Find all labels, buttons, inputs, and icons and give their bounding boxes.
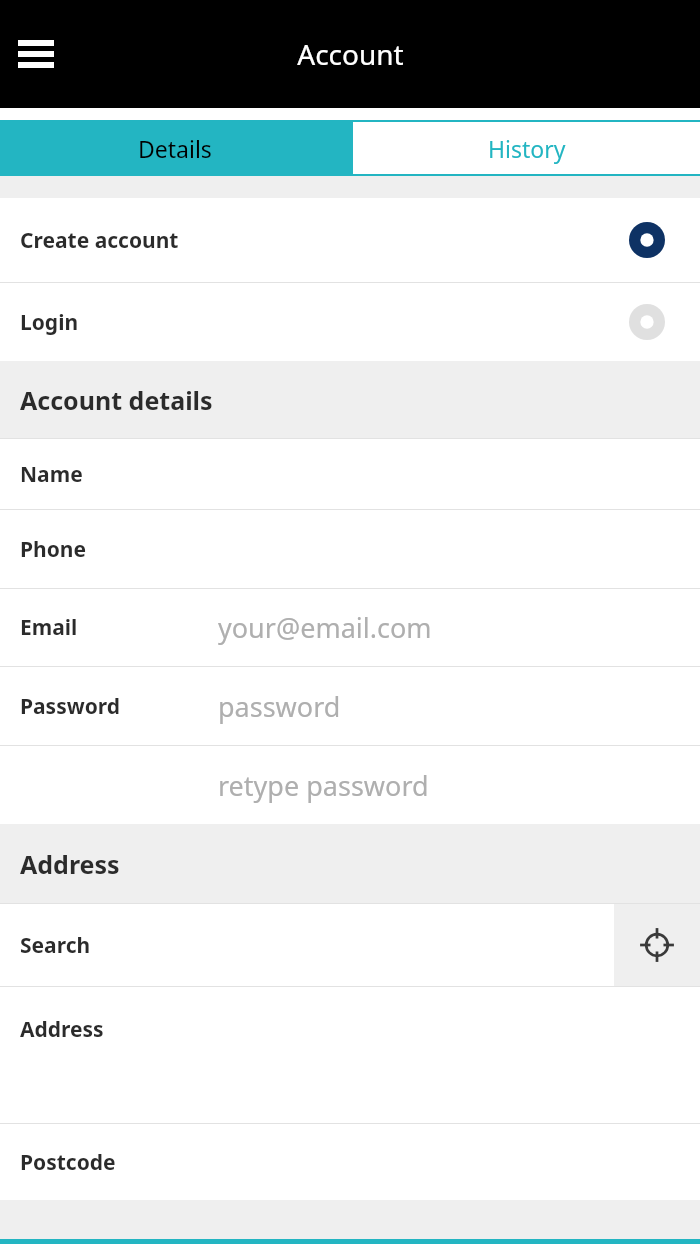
button[interactable]: Login xyxy=(0,283,700,361)
staticText: Address xyxy=(20,847,120,881)
staticText: Account details xyxy=(20,383,213,417)
button[interactable]: Use current location xyxy=(614,904,700,986)
button[interactable]: Details xyxy=(0,120,350,176)
staticText: Password xyxy=(20,692,121,721)
button[interactable]: Search xyxy=(0,904,614,986)
button[interactable]: Menu xyxy=(8,26,64,82)
button[interactable]: Postcode xyxy=(0,1124,700,1200)
staticText: Account xyxy=(297,35,404,73)
staticText: Email xyxy=(20,613,78,642)
staticText: Phone xyxy=(20,535,87,564)
button[interactable]: Email xyxy=(0,589,700,666)
button[interactable]: Address xyxy=(0,987,700,1123)
staticText: Create account xyxy=(20,226,179,255)
staticText: History xyxy=(488,133,566,164)
button[interactable]: Name xyxy=(0,439,700,509)
button[interactable]: Create account xyxy=(0,198,700,282)
staticText: Postcode xyxy=(20,1148,116,1177)
staticText: Details xyxy=(138,133,212,164)
button[interactable]: Phone xyxy=(0,510,700,588)
button[interactable]: History xyxy=(353,122,700,174)
staticText: Search xyxy=(20,931,91,960)
staticText: Login xyxy=(20,308,79,337)
staticText: your@email.com xyxy=(218,609,432,646)
staticText: password xyxy=(218,688,341,725)
staticText: retype password xyxy=(218,767,429,804)
button[interactable]: Password xyxy=(0,667,700,745)
staticText: Address xyxy=(20,1015,104,1044)
button[interactable]: retype password xyxy=(0,746,700,824)
staticText: Name xyxy=(20,460,83,489)
